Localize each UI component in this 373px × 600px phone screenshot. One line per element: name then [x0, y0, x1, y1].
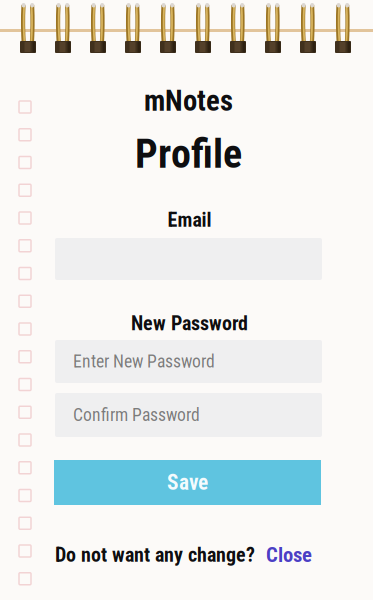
staticText: Email: [167, 208, 211, 232]
staticText: Confirm Password: [73, 405, 200, 425]
button[interactable]: Close: [266, 543, 312, 567]
staticText: Enter New Password: [73, 351, 215, 372]
staticText: Profile: [135, 131, 242, 177]
staticText: New Password: [131, 312, 248, 335]
staticText: mNotes: [144, 84, 233, 118]
staticText: Save: [167, 470, 208, 495]
button[interactable]: Save: [54, 460, 321, 505]
staticText: Close: [266, 543, 312, 567]
staticText: Do not want any change?: [55, 543, 255, 567]
